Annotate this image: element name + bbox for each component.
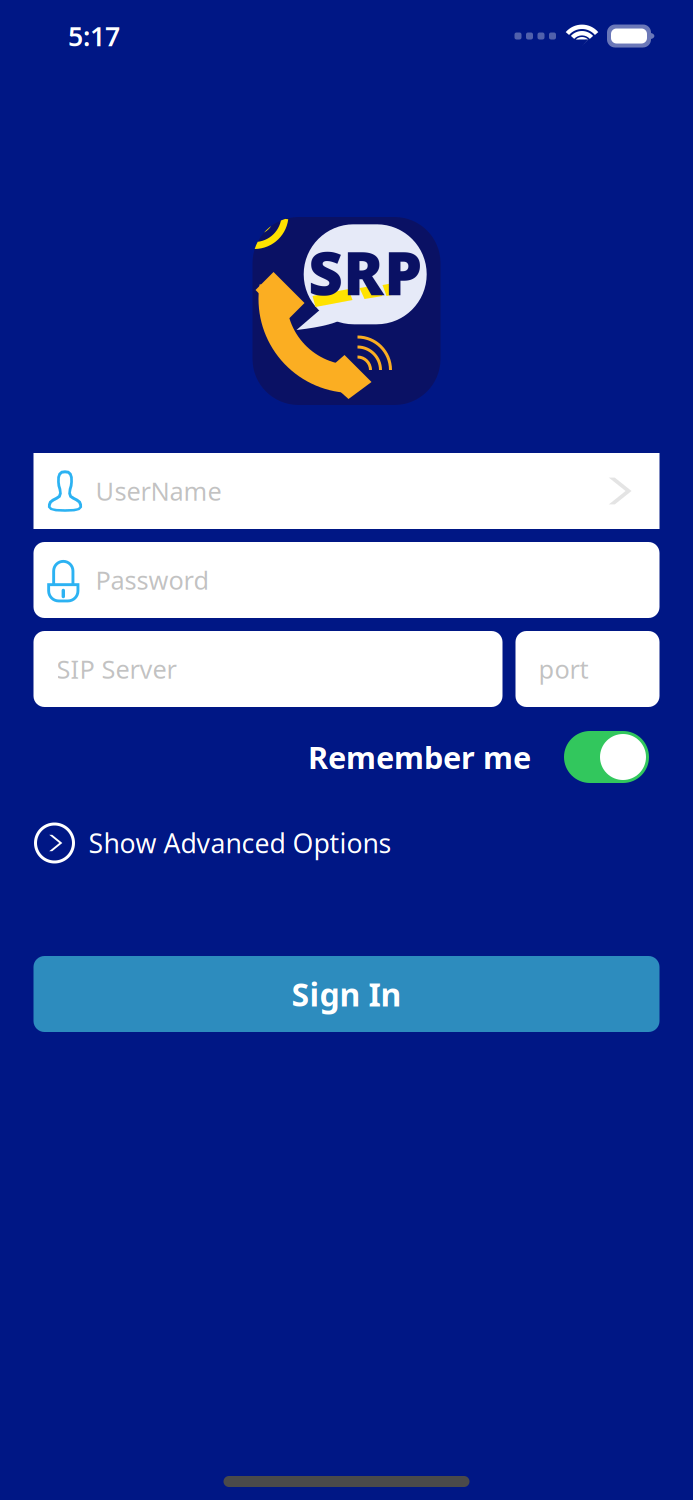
staticText: Sign In — [291, 973, 401, 1015]
button[interactable]: Password — [33, 542, 659, 618]
staticText: Remember me — [308, 737, 531, 777]
staticText: Password — [95, 563, 209, 597]
button[interactable]: SIP Server — [33, 631, 502, 707]
staticText: SIP Server — [56, 652, 176, 686]
staticText: UserName — [95, 474, 221, 508]
staticText: 5:17 — [68, 18, 120, 54]
button[interactable]: Sign In — [33, 956, 659, 1032]
button[interactable]: Show Advanced Options — [33, 817, 391, 869]
button[interactable]: Remember me — [564, 731, 649, 783]
staticText: SRP — [308, 232, 422, 312]
button[interactable]: UserName — [33, 453, 659, 529]
staticText: port — [538, 652, 588, 686]
staticText: Show Advanced Options — [88, 825, 391, 861]
button[interactable]: port — [515, 631, 659, 707]
